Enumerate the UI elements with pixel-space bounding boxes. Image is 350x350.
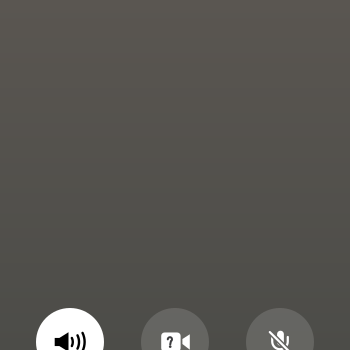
button[interactable]: Unmute xyxy=(246,308,314,350)
button[interactable]: Turn camera off xyxy=(141,308,209,350)
button[interactable]: Speaker xyxy=(36,308,104,350)
